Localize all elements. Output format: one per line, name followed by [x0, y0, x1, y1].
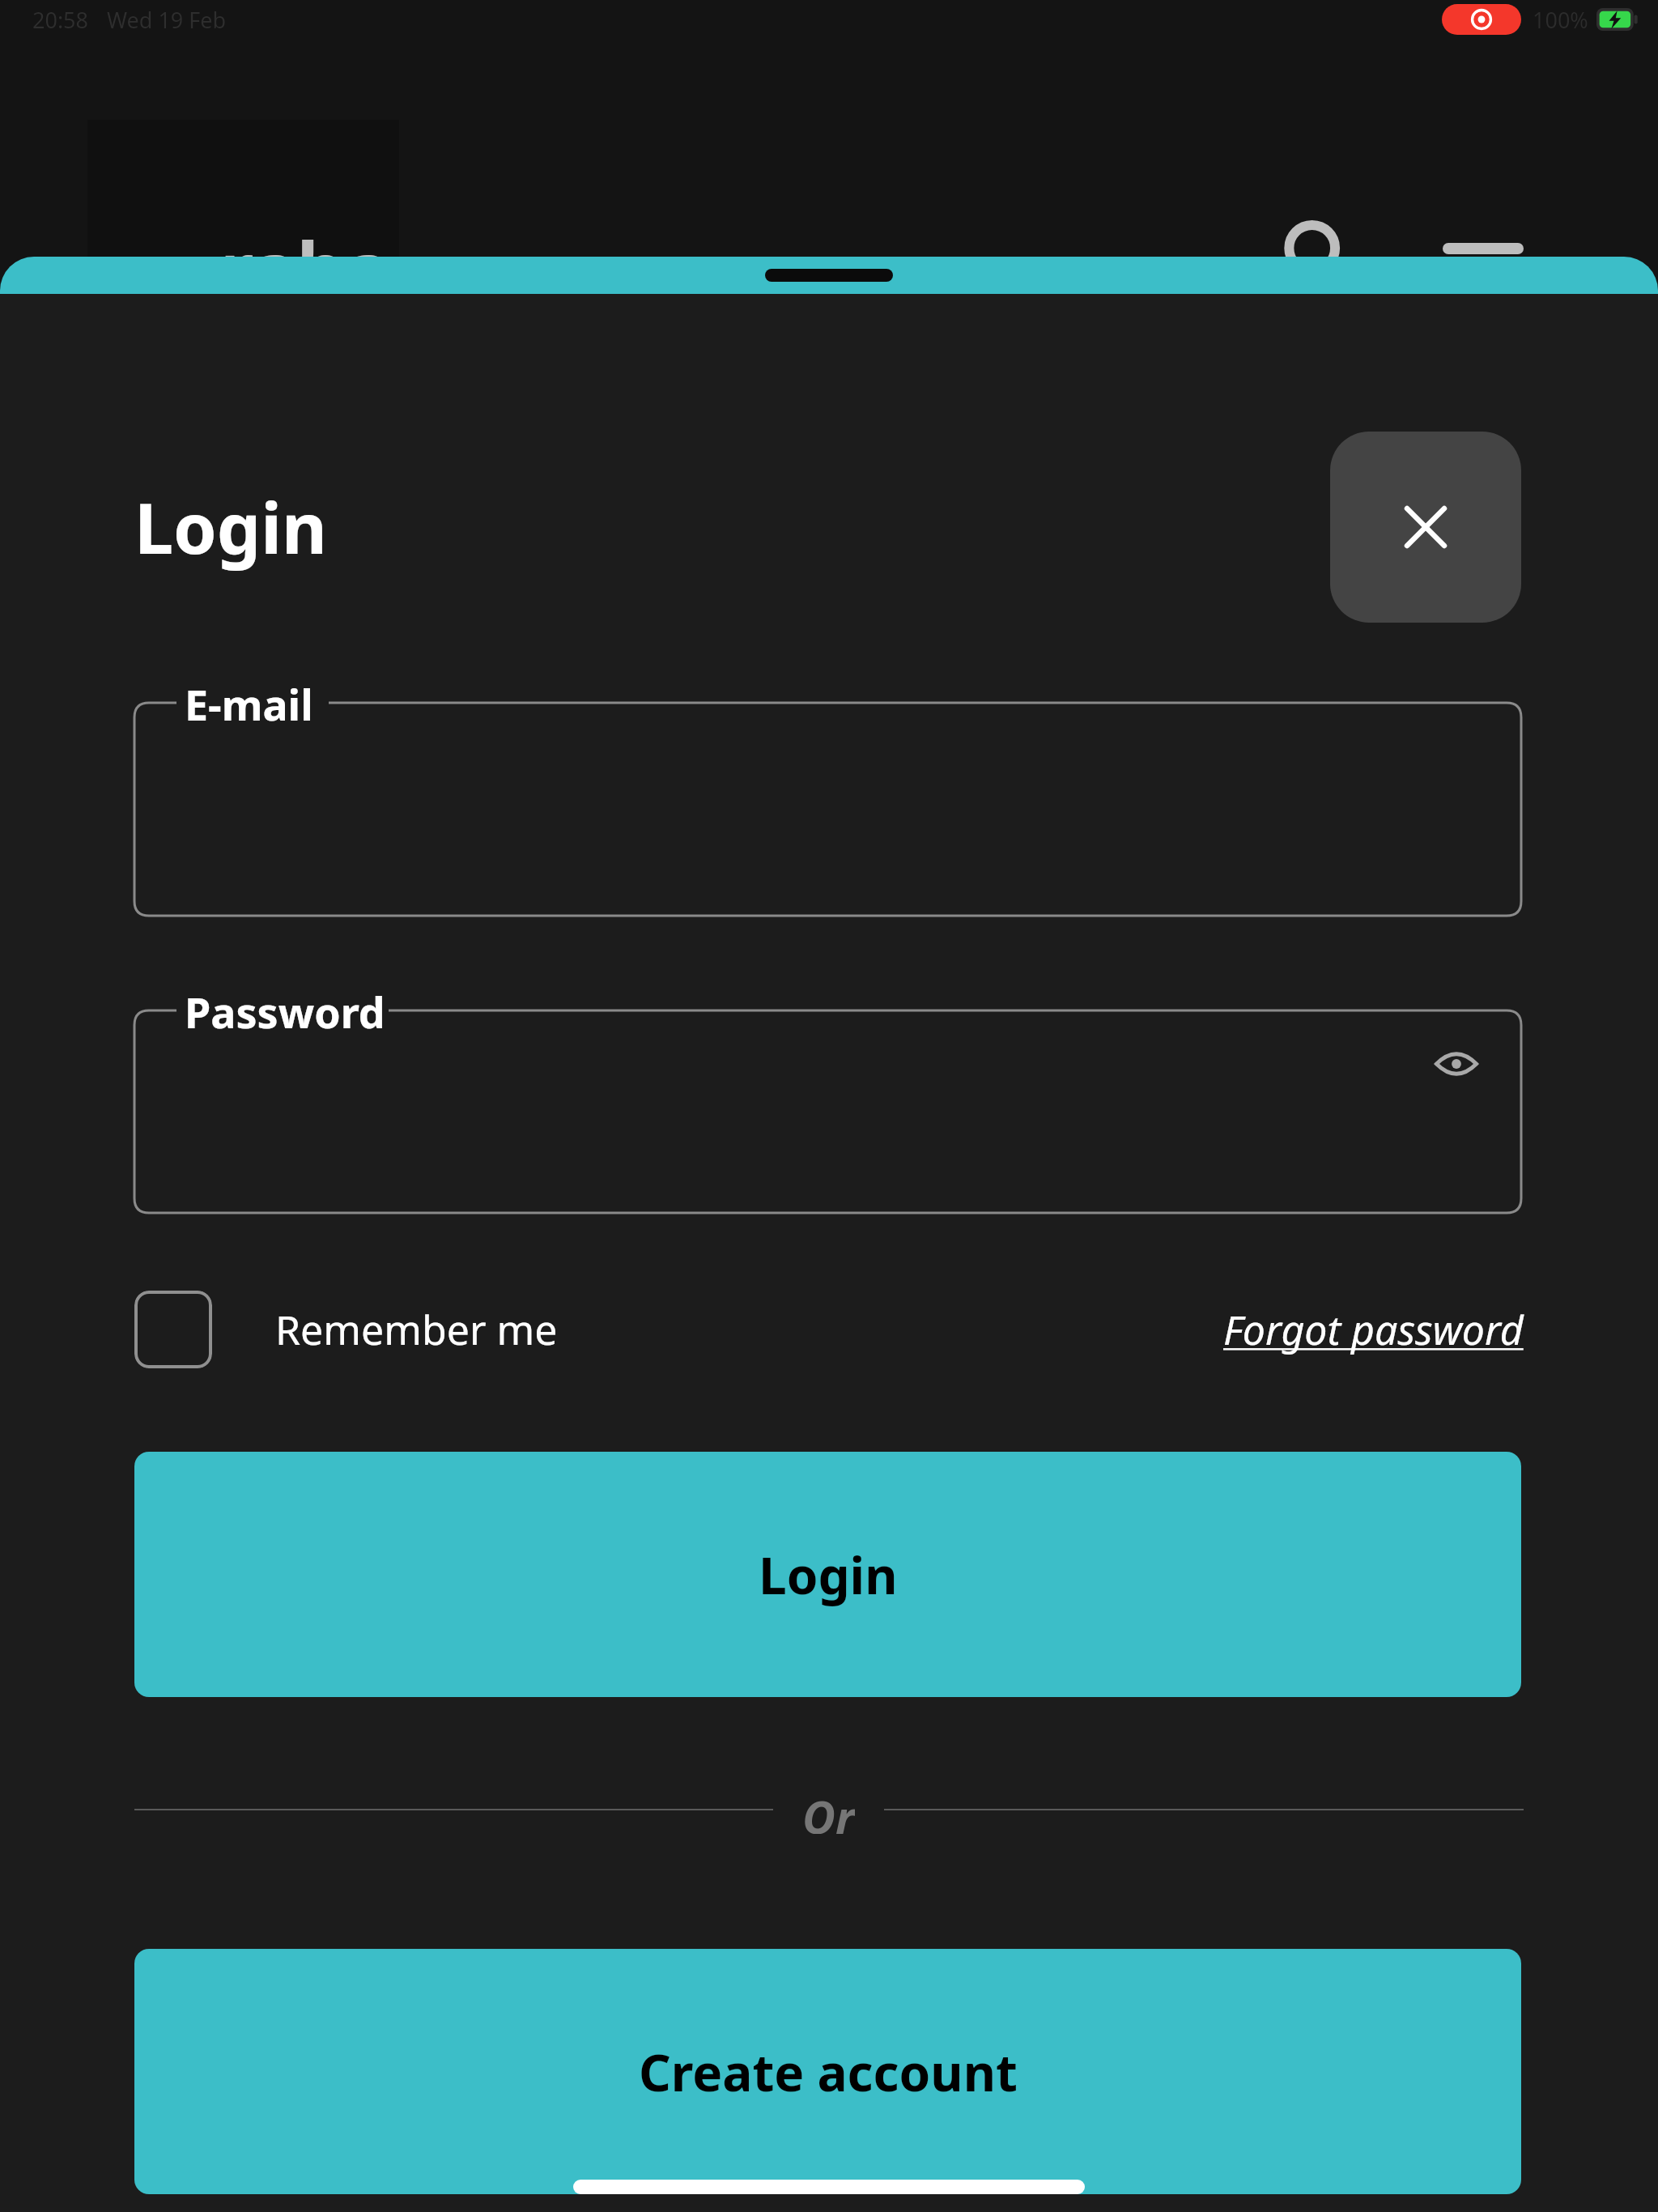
staticText: E-mail	[185, 675, 313, 733]
button[interactable]: Show password	[1426, 1033, 1487, 1095]
staticText: Forgot password	[1223, 1302, 1524, 1357]
staticText: Wed 19 Feb	[107, 5, 227, 35]
button[interactable]: Remember me	[134, 1291, 558, 1368]
staticText: Create account	[639, 2038, 1018, 2106]
button[interactable]: E-mail	[134, 703, 1521, 916]
button[interactable]: Create account	[134, 1949, 1521, 2194]
staticText: Login	[759, 1541, 898, 1609]
staticText: Password	[185, 983, 385, 1040]
staticText: 20:58	[32, 5, 89, 35]
staticText: Login	[134, 479, 327, 574]
button[interactable]: Login	[134, 1452, 1521, 1697]
button[interactable]: Close	[1330, 432, 1521, 623]
button[interactable]: Password	[134, 1010, 1521, 1213]
staticText: 100%	[1533, 5, 1588, 35]
staticText: raha	[220, 217, 390, 318]
button[interactable]: Forgot password	[1223, 1302, 1524, 1357]
staticText: Or	[802, 1785, 855, 1834]
staticText: Remember me	[275, 1302, 558, 1357]
